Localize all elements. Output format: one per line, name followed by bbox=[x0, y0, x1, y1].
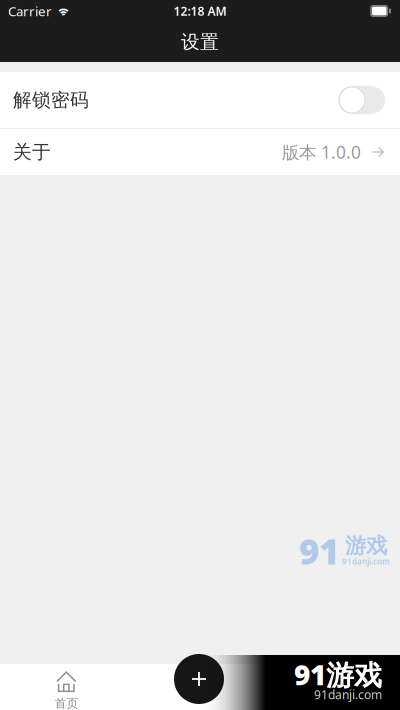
staticText: 12:18 AM bbox=[173, 3, 226, 19]
staticText: 91danji.com bbox=[314, 686, 382, 702]
button[interactable]: 关于 bbox=[0, 129, 400, 175]
staticText: 关于 bbox=[13, 140, 51, 163]
staticText: 91游戏 bbox=[294, 656, 382, 693]
staticText: 91danji.com bbox=[342, 556, 390, 567]
staticText: 游戏 bbox=[345, 533, 387, 559]
button[interactable]: 解锁密码 bbox=[0, 72, 400, 128]
staticText: 版本 1.0.0 bbox=[282, 140, 361, 163]
button[interactable]: 首页 bbox=[0, 664, 133, 710]
staticText: 首页 bbox=[54, 696, 78, 710]
staticText: 设置 bbox=[181, 30, 219, 53]
button[interactable]: Add bbox=[174, 654, 224, 704]
staticText: 解锁密码 bbox=[13, 88, 89, 111]
staticText: 91 bbox=[299, 528, 339, 574]
staticText: Carrier bbox=[8, 2, 52, 20]
